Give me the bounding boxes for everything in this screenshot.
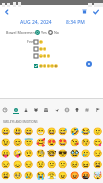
button[interactable]: 😅 [57, 126, 68, 137]
staticText: 🥸 [70, 149, 80, 158]
button[interactable]: Animals and nature [31, 105, 41, 114]
button[interactable]: 😁 [35, 126, 46, 137]
staticText: SMILEYS AND EMOTIONS [3, 120, 38, 124]
staticText: 😅 [58, 127, 68, 136]
button[interactable]: 🤪 [12, 148, 23, 159]
button[interactable]: 🥺 [12, 170, 23, 181]
button[interactable]: 😟 [35, 159, 46, 170]
staticText: 🤯 [93, 171, 103, 180]
button[interactable]: 😐🙂 [34, 46, 47, 51]
button[interactable]: 😡 [69, 170, 80, 181]
staticText: No [54, 30, 60, 35]
staticText: 🤣 [70, 127, 80, 136]
staticText: 😊 [13, 138, 23, 147]
staticText: 😉 [1, 138, 11, 147]
button[interactable]: 😀 [0, 126, 11, 137]
button[interactable]: 🥰 [35, 137, 46, 148]
button[interactable]: 😎 [57, 148, 68, 159]
button[interactable]: 😇 [23, 137, 34, 148]
staticText: 😐🙂 [39, 47, 47, 51]
button[interactable]: Add [85, 60, 92, 67]
button[interactable]: 😃 [12, 126, 23, 137]
staticText: 😕 [47, 160, 57, 169]
button[interactable]: 😕 [46, 159, 57, 170]
staticText: 😋 [93, 138, 103, 147]
button[interactable]: Food and drink [41, 105, 51, 114]
button[interactable]: 😖 [80, 159, 91, 170]
button[interactable]: 😆 [46, 126, 57, 137]
staticText: 😡 [70, 171, 80, 180]
staticText: 😒 [1, 160, 11, 169]
button[interactable]: Save [90, 6, 102, 18]
button[interactable]: 😂 [80, 126, 91, 137]
button[interactable]: 😉 [0, 137, 11, 148]
button[interactable]: Activities [62, 105, 72, 114]
staticText: 🙂 [93, 127, 103, 136]
button[interactable]: Yes [35, 30, 47, 35]
button[interactable]: 😞 [12, 159, 23, 170]
button[interactable]: Flags [93, 105, 103, 114]
button[interactable]: 😩 [0, 170, 11, 181]
staticText: 😛 [1, 149, 11, 158]
staticText: 😎 [58, 149, 68, 158]
staticText: 🤪 [13, 149, 23, 158]
staticText: 🥰 [36, 138, 46, 147]
button[interactable]: Smileys and emotions [11, 105, 21, 114]
staticText: 🤩 [58, 138, 68, 147]
button[interactable]: 😢 [23, 170, 34, 181]
staticText: 😖 [81, 160, 91, 169]
button[interactable]: Delete [79, 6, 90, 17]
button[interactable]: 😏 [92, 148, 103, 159]
button[interactable]: 😊 [12, 137, 23, 148]
button[interactable]: Back [0, 5, 13, 18]
button[interactable]: AUG 24, 2024 [20, 19, 52, 26]
staticText: 🤬 [81, 171, 91, 180]
button[interactable]: 😣 [69, 159, 80, 170]
button[interactable]: 😍 [46, 137, 57, 148]
button[interactable]: 8:34 PM [66, 19, 85, 26]
staticText: 😆 [47, 127, 57, 136]
staticText: 😍 [47, 138, 57, 147]
button[interactable]: 😘 [69, 137, 80, 148]
button[interactable]: 😫 [92, 159, 103, 170]
button[interactable]: 🤩 [57, 137, 68, 148]
staticText: 😏 [93, 149, 103, 158]
button[interactable]: Recently used [0, 105, 10, 114]
staticText: Bowel Movement [6, 30, 37, 35]
button[interactable]: 🙂 [92, 126, 103, 137]
button[interactable]: 😚 [80, 137, 91, 148]
staticText: 😁 [36, 127, 46, 136]
button[interactable]: Travel and places [52, 105, 62, 114]
staticText: 😂 [81, 127, 91, 136]
staticText: 🥲 [81, 149, 91, 158]
button[interactable]: 🙂 [34, 39, 43, 44]
button[interactable]: 🥸 [69, 148, 80, 159]
button[interactable]: 😤 [46, 170, 57, 181]
button[interactable]: 😔 [23, 159, 34, 170]
button[interactable]: 🤨 [23, 148, 34, 159]
staticText: 😣 [70, 160, 80, 169]
button[interactable]: People [21, 105, 31, 114]
button[interactable]: 🥲 [80, 148, 91, 159]
button[interactable]: 🤬 [80, 170, 91, 181]
staticText: Feel [27, 39, 35, 44]
button[interactable]: 🙁 [57, 159, 68, 170]
button[interactable]: 😠 [57, 170, 68, 181]
button[interactable]: 😔😐🙂 [34, 53, 51, 58]
button[interactable]: 🤯 [92, 170, 103, 181]
button[interactable]: 😄 [23, 126, 34, 137]
button[interactable]: No [48, 30, 60, 35]
button[interactable]: 🧐 [35, 148, 46, 159]
button[interactable]: Symbols [82, 105, 92, 114]
button[interactable]: 😛 [0, 148, 11, 159]
button[interactable]: 🤓 [46, 148, 57, 159]
staticText: 😔😐🙂 [39, 54, 51, 58]
button[interactable]: Objects [72, 105, 82, 114]
button[interactable]: 😋 [92, 137, 103, 148]
button[interactable]: 🤣 [69, 126, 80, 137]
staticText: 😫 [93, 160, 103, 169]
button[interactable]: 😒 [0, 159, 11, 170]
staticText: 😟 [36, 160, 46, 169]
button[interactable]: 😢😟😐🙂😃 [34, 63, 58, 68]
button[interactable]: 😭 [35, 170, 46, 181]
